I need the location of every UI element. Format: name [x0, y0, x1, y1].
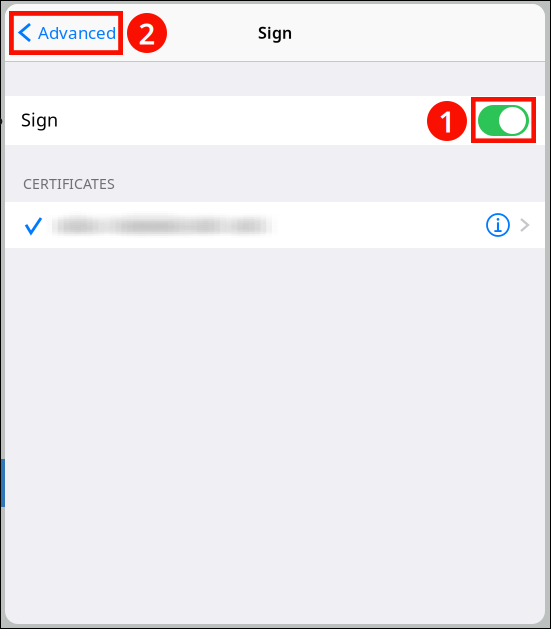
staticText: Advanced — [38, 21, 116, 44]
button[interactable]: More Info — [473, 202, 513, 248]
staticText: Sign — [258, 22, 292, 43]
button[interactable]: Sign — [473, 96, 543, 145]
staticText: Sign — [21, 107, 58, 132]
button[interactable] — [5, 202, 545, 248]
button[interactable]: Advanced — [5, 4, 135, 61]
staticText: CERTIFICATES — [23, 174, 115, 193]
staticText: 2 — [138, 13, 155, 53]
staticText: 1 — [438, 101, 455, 141]
